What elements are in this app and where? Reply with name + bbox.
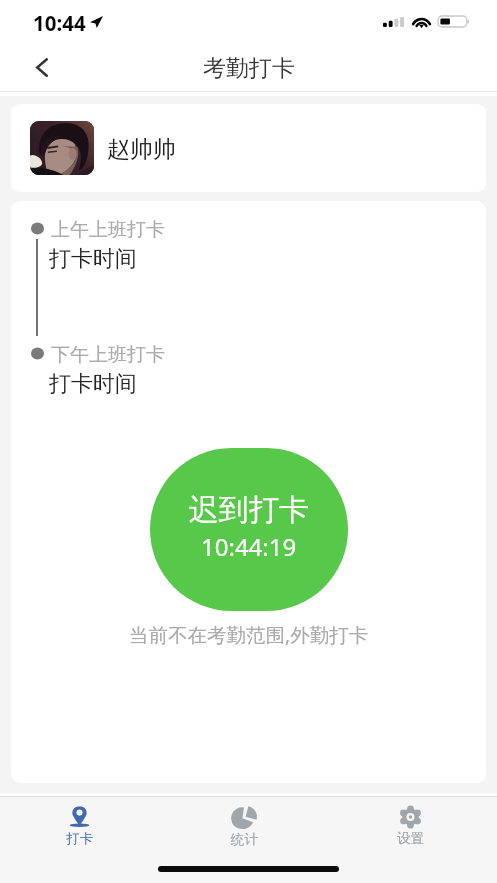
staticText: 当前不在考勤范围,外勤打卡 [129, 621, 369, 648]
staticText: 赵帅帅 [107, 135, 176, 164]
staticText: 迟到打卡 [189, 491, 309, 529]
button[interactable]: Back [20, 44, 76, 91]
staticText: 打卡 [66, 830, 93, 847]
staticText: 10:44 [33, 9, 86, 37]
staticText: 10:44:19 [201, 530, 297, 563]
staticText: 统计 [231, 831, 258, 848]
staticText: 考勤打卡 [203, 54, 295, 83]
staticText: 打卡时间 [49, 245, 137, 273]
staticText: 打卡时间 [49, 370, 137, 398]
button[interactable]: 赵帅帅 [11, 104, 486, 192]
staticText: 设置 [397, 830, 424, 847]
button[interactable]: 统计 [200, 806, 288, 848]
staticText: 上午上班打卡 [51, 218, 165, 242]
button[interactable]: 打卡 [35, 806, 123, 847]
button[interactable]: 迟到打卡 [150, 448, 348, 611]
button[interactable]: 设置 [366, 806, 454, 847]
staticText: 下午上班打卡 [51, 343, 165, 367]
